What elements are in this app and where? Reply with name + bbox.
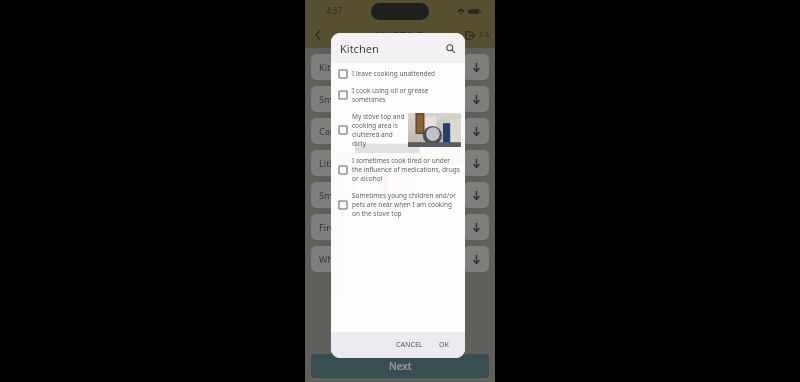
button[interactable]: Back [309, 26, 327, 44]
staticText: I leave cooking unattended [352, 69, 461, 78]
button[interactable]: Smoke alarms [311, 86, 458, 112]
button[interactable]: I leave cooking unattended [331, 65, 465, 82]
staticText: Candles [319, 125, 354, 137]
button[interactable]: My stove top and cooking area is clutter… [331, 108, 465, 152]
button[interactable]: Notifications [449, 28, 463, 42]
staticText: OK [439, 340, 449, 350]
staticText: Next [389, 359, 412, 373]
staticText: 4:37 [326, 5, 342, 16]
button[interactable]: Expand Smoking [463, 182, 489, 208]
button[interactable]: I cook using oil or grease sometimes [331, 82, 465, 108]
button[interactable]: Expand Kitchen [463, 54, 489, 80]
button[interactable]: Wheelchair [311, 246, 458, 272]
staticText: Smoke alarms [319, 93, 380, 105]
button[interactable]: Lithium batteries [311, 150, 458, 176]
button[interactable]: CANCEL [392, 337, 427, 353]
staticText: Smoking [319, 189, 357, 201]
button[interactable]: Expand Wheelchair [463, 246, 489, 272]
staticText: Fireplace [319, 221, 358, 233]
button[interactable]: OK [435, 337, 453, 353]
staticText: Wheelchair [319, 253, 368, 265]
button[interactable]: Log out [463, 28, 477, 42]
staticText: Kitchen [340, 41, 379, 56]
staticText: Sometimes young children and/or pets are… [352, 191, 461, 218]
staticText: My stove top and cooking area is clutter… [352, 112, 405, 148]
button[interactable]: Translate [477, 28, 491, 42]
button[interactable]: Sometimes young children and/or pets are… [331, 187, 465, 222]
button[interactable]: Candles [311, 118, 458, 144]
staticText: CANCEL [396, 340, 423, 350]
button[interactable]: Kitchen [311, 54, 458, 80]
button[interactable]: Next [311, 354, 489, 378]
staticText: SHIELD [373, 26, 427, 46]
button[interactable]: Search [442, 40, 458, 56]
button[interactable]: Expand Candles [463, 118, 489, 144]
button[interactable]: Expand Fireplace [463, 214, 489, 240]
staticText: 文A [478, 30, 490, 40]
staticText: I cook using oil or grease sometimes [352, 86, 461, 104]
staticText: I sometimes cook tired or under the infl… [352, 156, 461, 183]
button[interactable]: Smoking [311, 182, 458, 208]
staticText: Kitchen [319, 61, 352, 73]
button[interactable]: Expand Lithium batteries [463, 150, 489, 176]
button[interactable]: Expand Smoke alarms [463, 86, 489, 112]
button[interactable]: Fireplace [311, 214, 458, 240]
button[interactable]: I sometimes cook tired or under the infl… [331, 152, 465, 187]
staticText: Lithium batteries [319, 157, 393, 169]
